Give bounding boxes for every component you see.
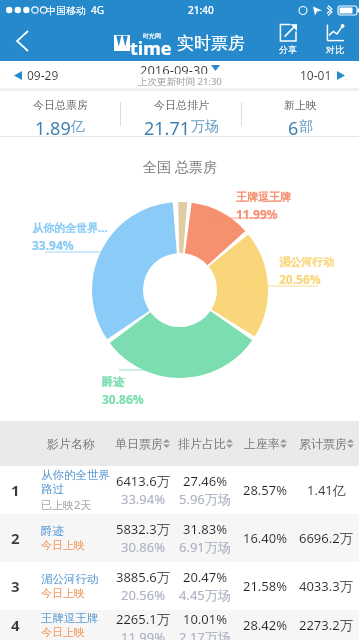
staticText: 中国移动 [46,4,86,17]
staticText: 28.57% [243,481,288,499]
staticText: 爵迹 [41,524,64,538]
staticText: 王牌逗王牌 [41,611,99,625]
staticText: 王牌逗王牌 [236,190,291,204]
staticText: 亿 [71,118,85,136]
staticText: 6696.2万 [299,529,353,547]
staticText: 累计票房 [299,436,347,451]
button[interactable]: 今日总票房 [0,91,120,136]
staticText: 3 [11,576,20,596]
staticText: 2265.1万 [116,610,170,628]
staticText: 从你的全世界路过 [41,468,114,497]
staticText: time [130,36,172,56]
staticText: 已上映2天 [41,497,92,512]
staticText: 2.17万场 [179,628,231,640]
staticText: 从你的全世界… [32,220,108,235]
staticText: 21.58% [243,577,288,595]
staticText: 10-01 [300,67,332,83]
staticText: 31.83% [183,520,228,538]
staticText: 3885.6万 [116,568,170,586]
staticText: 部 [299,118,313,136]
staticText: 33.94% [32,237,74,253]
staticText: 爵迹 [102,375,124,389]
staticText: 10.01% [183,610,228,628]
staticText: 6.91万场 [179,538,231,556]
staticText: 单日票房 [115,436,163,451]
button[interactable]: 1 [0,466,359,514]
button[interactable]: 3 [0,562,359,610]
staticText: 6 [288,116,299,136]
staticText: 1.89 [35,116,71,136]
staticText: 今日上映 [41,586,85,600]
staticText: 33.94% [121,490,166,508]
button[interactable]: 上座率 [238,436,293,451]
staticText: 排片占比 [178,436,226,451]
staticText: 2016-09-30 [140,61,208,74]
staticText: 上次更新时间 21:30 [138,75,222,88]
staticText: 时光网 [143,32,161,40]
staticText: 21.71 [144,116,191,136]
staticText: 4033.3万 [299,577,353,595]
staticText: 2 [11,528,20,548]
button[interactable]: 今日总排片 [121,91,241,136]
staticText: 实时票房 [177,33,245,54]
staticText: 湄公河行动 [279,255,334,269]
staticText: 4 [11,615,20,635]
button[interactable]: 2016-09-30 [138,61,222,88]
staticText: 30.86% [121,538,166,556]
button[interactable]: 单日票房 [112,436,172,451]
staticText: 20.56% [121,586,166,604]
staticText: 30.86% [102,391,144,407]
staticText: 万场 [191,118,219,136]
staticText: 湄公河行动 [41,572,99,586]
staticText: 21:40 [188,3,214,17]
staticText: 5.96万场 [179,490,231,508]
staticText: 20.56% [279,271,321,287]
staticText: 4G [91,3,104,17]
button[interactable]: 10-01 [300,67,345,83]
staticText: 今日总票房 [33,98,88,112]
staticText: 27.46% [183,472,228,490]
staticText: 分享 [279,44,297,55]
staticText: 今日上映 [41,625,85,639]
button[interactable]: 09-29 [14,67,59,83]
staticText: 上座率 [244,436,280,451]
button[interactable]: 新上映 [242,91,359,136]
button[interactable]: Back [0,20,44,61]
button[interactable]: 分享 [266,20,310,61]
staticText: 2273.2万 [299,616,353,634]
staticText: 16.40% [243,529,288,547]
button[interactable]: 2 [0,514,359,562]
button[interactable]: 影片名称 [30,436,112,451]
staticText: 1 [11,480,20,500]
staticText: 4.45万场 [179,586,231,604]
button[interactable]: 排片占比 [172,436,238,451]
button[interactable]: 累计票房 [293,436,359,451]
staticText: 1.41亿 [307,481,346,499]
staticText: 5832.3万 [116,520,170,538]
staticText: 对比 [326,44,344,55]
button[interactable]: 对比 [313,20,357,61]
staticText: 今日总排片 [154,98,209,112]
staticText: 今日上映 [41,538,85,552]
staticText: 11.99% [236,206,278,222]
staticText: 6413.6万 [116,472,170,490]
staticText: 新上映 [284,98,317,112]
staticText: 20.47% [183,568,228,586]
staticText: 影片名称 [47,436,95,451]
button[interactable]: 4 [0,610,359,640]
staticText: 28.42% [243,616,288,634]
staticText: 11.99% [121,628,166,640]
staticText: 09-29 [27,67,59,83]
staticText: 全国 总票房 [143,157,217,176]
